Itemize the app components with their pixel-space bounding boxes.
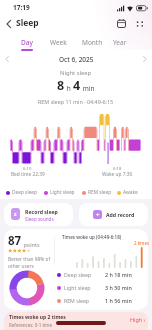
staticText: 2 times bbox=[134, 240, 150, 246]
staticText: REM sleep bbox=[64, 297, 105, 304]
staticText: min bbox=[81, 84, 95, 93]
button[interactable]: z bbox=[4, 203, 73, 226]
button[interactable] bbox=[6, 20, 12, 28]
staticText: Bed time 22:39 bbox=[11, 171, 45, 178]
staticText: + bbox=[96, 211, 100, 219]
staticText: High › bbox=[130, 316, 146, 323]
staticText: Night sleep bbox=[60, 69, 92, 77]
staticText: Wake up 7:30 bbox=[102, 171, 133, 178]
staticText: h bbox=[65, 84, 73, 93]
staticText: References: 0-1 time bbox=[9, 322, 53, 328]
staticText: Deep sleep bbox=[12, 189, 38, 196]
button[interactable]: Times woke up 2 times bbox=[4, 312, 148, 330]
staticText: 8 bbox=[57, 77, 65, 94]
staticText: 6:18 bbox=[113, 166, 122, 172]
staticText: Record sleep bbox=[25, 208, 58, 215]
staticText: REM sleep 11 min · 04:49-6:15 bbox=[38, 98, 114, 105]
staticText: Light sleep bbox=[50, 189, 75, 196]
staticText: 1 h 56 min bbox=[105, 297, 132, 304]
button[interactable]: Year bbox=[113, 38, 127, 47]
staticText: 6:10 bbox=[23, 166, 32, 172]
staticText: Sleep bbox=[16, 17, 39, 29]
button[interactable]: Day bbox=[21, 38, 33, 47]
staticText: REM sleep bbox=[88, 189, 112, 196]
staticText: Light sleep bbox=[64, 284, 105, 291]
button[interactable] bbox=[136, 20, 144, 28]
button[interactable]: + bbox=[79, 203, 148, 226]
staticText: Add record bbox=[106, 211, 135, 218]
staticText: Oct 6, 2025 bbox=[59, 55, 94, 64]
staticText: Sleep sounds bbox=[25, 216, 54, 222]
staticText: points bbox=[22, 241, 40, 248]
staticText: 4 bbox=[73, 77, 81, 94]
staticText: z bbox=[14, 211, 17, 218]
staticText: 17:19 bbox=[13, 3, 30, 12]
staticText: Awake bbox=[123, 189, 138, 196]
staticText: 3 h 50 min bbox=[105, 284, 132, 291]
staticText: 87 bbox=[8, 233, 22, 249]
button[interactable]: Month bbox=[82, 38, 103, 47]
staticText: 2 h 18 min bbox=[105, 271, 132, 278]
staticText: Times woke up 2 times bbox=[9, 314, 66, 321]
staticText: other users bbox=[8, 263, 34, 270]
button[interactable] bbox=[117, 19, 126, 28]
staticText: Better than 98% of bbox=[8, 256, 51, 263]
button[interactable]: Week bbox=[50, 38, 67, 47]
staticText: Times woke up (04:49-6:18) bbox=[62, 234, 122, 240]
staticText: Deep sleep bbox=[64, 271, 105, 278]
